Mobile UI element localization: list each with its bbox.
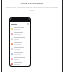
button[interactable] [10,51,30,56]
staticText: YOUR PASSWORDS [20,2,44,5]
button[interactable] [10,46,30,51]
button[interactable] [10,61,30,66]
button[interactable] [10,41,30,46]
button[interactable] [10,36,30,41]
staticText: Every login, card and secure note kept i… [4,6,60,11]
button[interactable] [10,31,30,36]
button[interactable] [10,26,30,31]
button[interactable] [10,56,30,61]
